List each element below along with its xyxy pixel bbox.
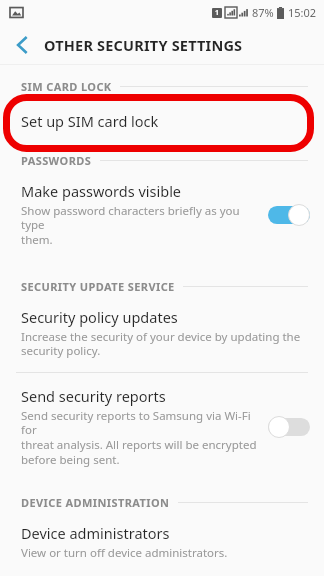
button[interactable]: On [268, 204, 310, 226]
button[interactable]: Device administrators [0, 510, 324, 574]
staticText: 87% [252, 5, 274, 20]
button[interactable]: Set up SIM card lock [0, 94, 324, 147]
staticText: PASSWORDS [21, 153, 92, 168]
staticText: Device administrators [21, 523, 170, 543]
staticText: 15:02 [288, 5, 317, 20]
staticText: Send security reports [21, 386, 166, 406]
button[interactable]: Off [268, 416, 310, 438]
button[interactable]: Make passwords visible [0, 168, 324, 261]
staticText: View or turn off device administrators. [21, 545, 228, 561]
staticText: Increase the security of your device by … [21, 329, 301, 359]
staticText: SECURITY UPDATE SERVICE [21, 279, 175, 294]
staticText: Make passwords visible [21, 181, 182, 201]
staticText: DEVICE ADMINISTRATION [21, 495, 170, 510]
button[interactable]: Send security reports [0, 373, 324, 481]
staticText: Set up SIM card lock [21, 111, 159, 131]
staticText: SIM CARD LOCK [21, 79, 112, 94]
staticText: 1 [215, 8, 220, 18]
button[interactable]: Security policy updates [0, 294, 324, 372]
staticText: Security policy updates [21, 307, 178, 327]
staticText: Send security reports to Samsung via Wi-… [21, 408, 260, 468]
staticText: OTHER SECURITY SETTINGS [44, 35, 243, 55]
staticText: Show password characters briefly as you … [21, 203, 260, 248]
button[interactable]: Navigate up [0, 24, 44, 65]
